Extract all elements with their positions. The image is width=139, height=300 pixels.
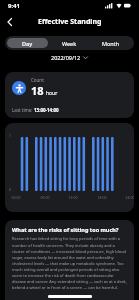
button[interactable]: Week (48, 38, 90, 48)
staticText: Effective Standing (38, 17, 102, 27)
staticText: 9:41 (8, 2, 20, 10)
staticText: Research has linked sitting for long per… (12, 236, 127, 290)
staticText: Count (31, 77, 44, 83)
staticText: 18:00 (93, 195, 111, 200)
button[interactable]: Count (5, 72, 134, 118)
staticText: 2022/09/12 (51, 54, 81, 61)
staticText: hour (46, 90, 58, 97)
staticText: 06:00 (36, 195, 54, 200)
button[interactable]: 2022/09/12 (51, 54, 88, 61)
staticText: 1 (9, 133, 12, 138)
staticText: Last time: (12, 107, 34, 113)
staticText: Day (22, 40, 33, 47)
staticText: What are the risks of sitting too much? (12, 226, 119, 233)
button[interactable]: 1 (5, 123, 134, 212)
staticText: Week (62, 40, 77, 47)
button[interactable] (5, 17, 15, 27)
button[interactable]: Day (7, 38, 48, 48)
staticText: 13:00-14:00 (34, 107, 59, 113)
staticText: 18 (31, 83, 44, 98)
staticText: 0 (9, 187, 12, 192)
staticText: 12:00 (64, 195, 82, 200)
button[interactable]: Month (90, 38, 132, 48)
staticText: Month (102, 40, 120, 47)
staticText: 24:00 (121, 195, 134, 200)
staticText: 00:00 (7, 195, 25, 200)
